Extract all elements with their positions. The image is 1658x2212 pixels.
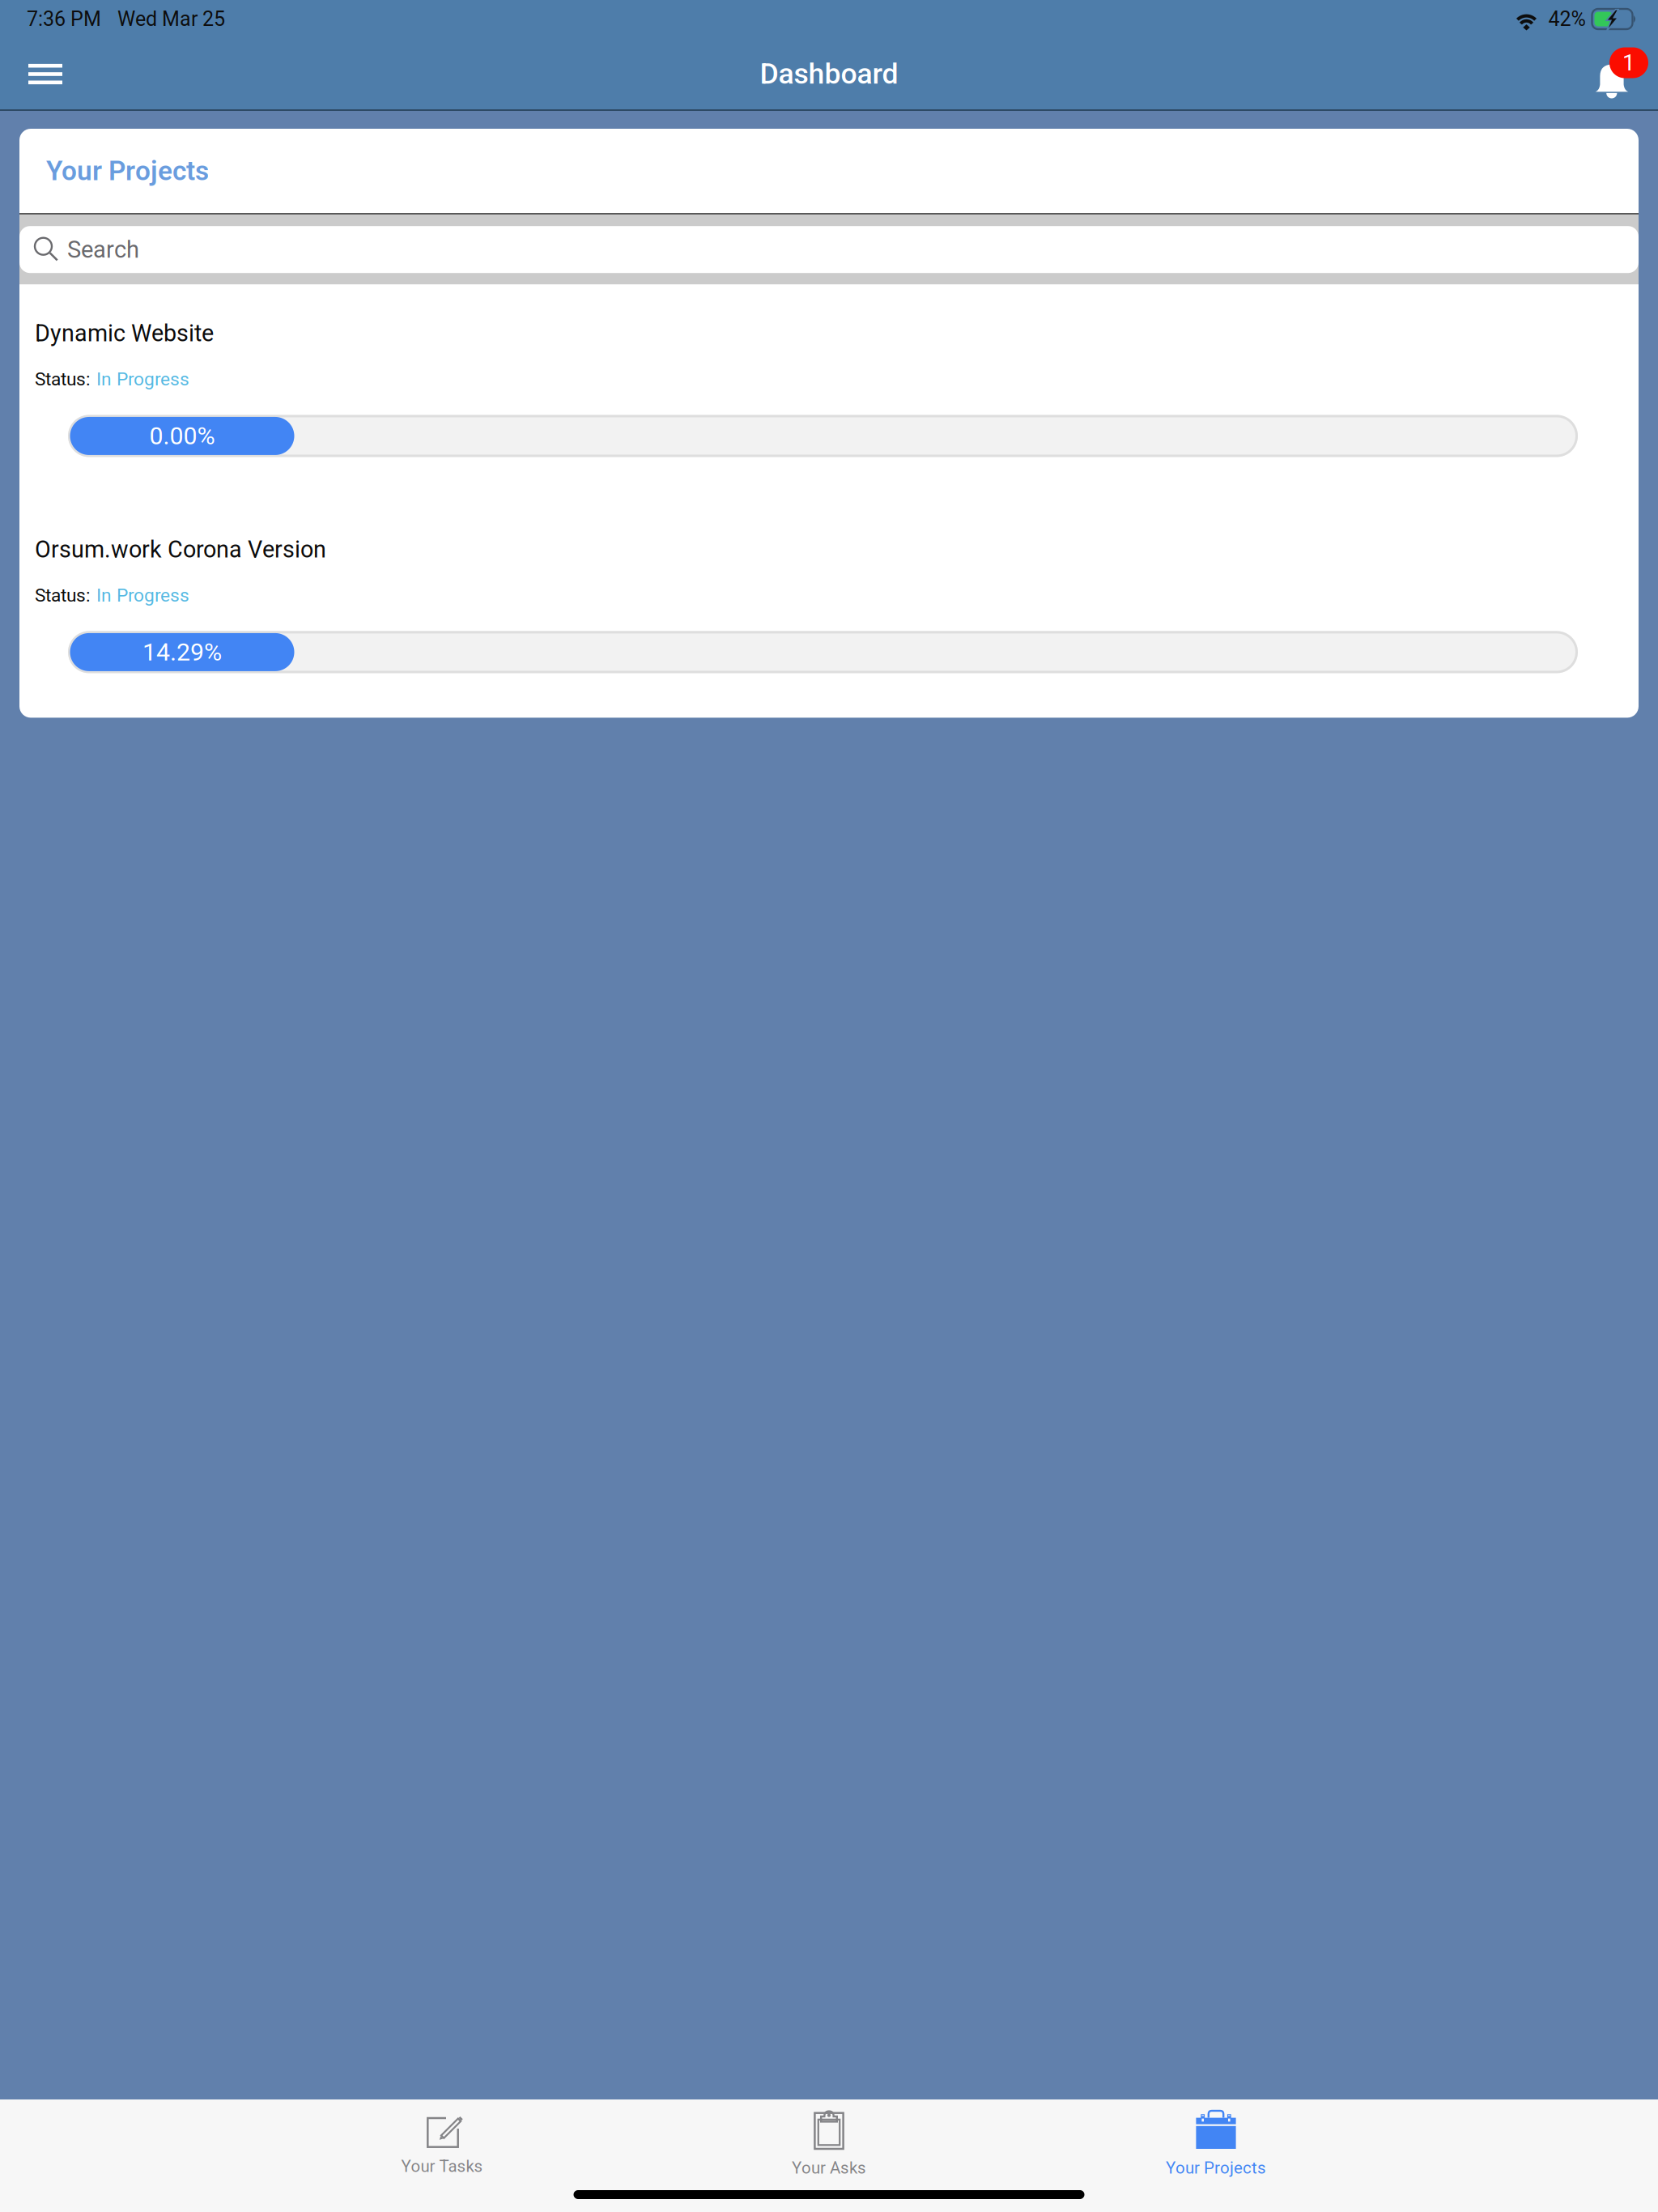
staticText: Status: [35, 584, 90, 606]
staticText: Your Projects [1166, 2158, 1266, 2178]
staticText: 14.29% [142, 638, 222, 667]
staticText: Search [67, 236, 139, 263]
button[interactable]: Orsum.work Corona Version [19, 499, 1639, 718]
staticText: Status: [35, 368, 90, 390]
staticText: Orsum.work Corona Version [35, 536, 326, 563]
staticText: 1 [1622, 49, 1635, 76]
staticText: Your Asks [792, 2158, 866, 2178]
button[interactable]: Notifications [1561, 23, 1658, 124]
staticText: 7:36 PM [27, 7, 101, 31]
staticText: 0.00% [149, 422, 215, 450]
staticText: Dashboard [760, 57, 898, 91]
staticText: Your Tasks [401, 2157, 483, 2176]
staticText: Your Projects [46, 155, 209, 187]
staticText: Wed Mar 25 [117, 7, 225, 31]
staticText: In Progress [96, 368, 189, 390]
staticText: In Progress [96, 584, 189, 606]
button[interactable]: Your Projects [1022, 2099, 1409, 2180]
button[interactable]: Your Tasks [249, 2099, 636, 2180]
staticText: 42% [1548, 7, 1586, 31]
button[interactable]: Menu [0, 38, 83, 109]
button[interactable]: Your Asks [636, 2099, 1022, 2180]
staticText: Dynamic Website [35, 320, 214, 347]
button[interactable]: Dynamic Website [19, 284, 1639, 499]
